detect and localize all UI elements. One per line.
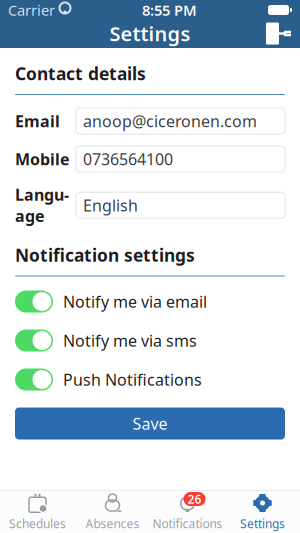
staticText: 26 <box>187 491 201 507</box>
staticText: Settings <box>240 515 285 531</box>
staticText: Absences <box>85 515 139 531</box>
button[interactable]: 26 <box>150 491 225 533</box>
button[interactable]: Notify me via sms <box>15 325 285 355</box>
staticText: Language <box>15 184 69 226</box>
staticText: Notify me via email <box>63 291 207 312</box>
button[interactable]: Notify me via email <box>15 286 285 316</box>
staticText: Carrier <box>8 0 55 20</box>
button[interactable]: Save <box>15 407 285 439</box>
staticText: Save <box>132 413 167 434</box>
staticText: Contact details <box>15 62 146 85</box>
staticText: Push Notifications <box>63 369 202 390</box>
staticText: Notifications <box>152 515 222 531</box>
staticText: anoop@ciceronen.com <box>83 110 257 132</box>
button[interactable]: Settings <box>225 491 300 533</box>
staticText: Notification settings <box>15 243 195 266</box>
staticText: 8:55 PM <box>142 0 197 20</box>
button[interactable]: 0736564100 <box>76 146 285 172</box>
button[interactable]: anoop@ciceronen.com <box>76 108 285 134</box>
staticText: Mobile <box>15 148 70 170</box>
staticText: Schedules <box>9 515 66 531</box>
button[interactable]: Push Notifications <box>15 364 285 394</box>
staticText: Settings <box>109 20 190 47</box>
button[interactable]: Schedules <box>0 491 75 533</box>
staticText: Email <box>15 110 60 132</box>
button[interactable]: Log out <box>258 18 300 48</box>
button[interactable]: English <box>76 192 285 218</box>
staticText: 0736564100 <box>83 148 173 170</box>
staticText: English <box>83 195 138 216</box>
staticText: Notify me via sms <box>63 330 197 351</box>
button[interactable]: Absences <box>75 491 150 533</box>
